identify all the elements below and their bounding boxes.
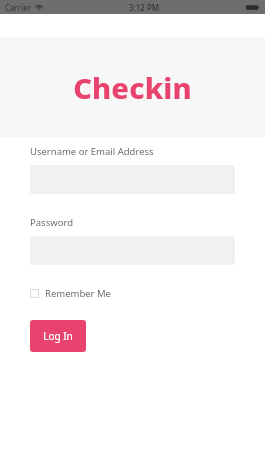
staticText: 3:12 PM (129, 2, 160, 13)
staticText: Password (30, 216, 73, 229)
staticText: Carrier (5, 2, 32, 13)
staticText: Username or Email Address (30, 145, 154, 158)
staticText: Log In (43, 329, 73, 343)
button[interactable]: Remember Me (30, 287, 111, 300)
staticText: Checkin (73, 68, 192, 107)
button[interactable]: Log In (30, 320, 86, 352)
staticText: Remember Me (45, 287, 111, 300)
